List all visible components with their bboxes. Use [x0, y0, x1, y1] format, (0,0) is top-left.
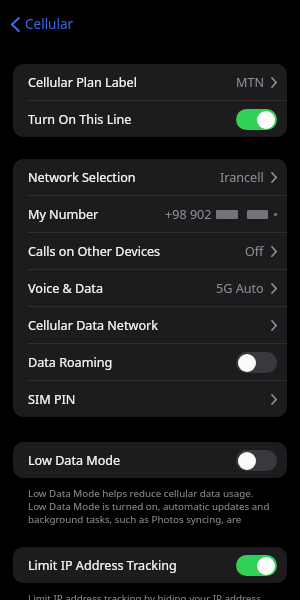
staticText: Calls on Other Devices — [28, 243, 161, 260]
button[interactable]: Low Data Mode — [13, 442, 287, 478]
button[interactable]: Toggle Turn On This Line — [236, 109, 277, 130]
button[interactable]: Limit IP Address Tracking — [13, 547, 287, 583]
staticText: Cellular — [25, 15, 74, 33]
staticText: +98 902 — [165, 206, 212, 223]
staticText: My Number — [28, 206, 99, 223]
staticText: Turn On This Line — [28, 111, 132, 128]
button[interactable]: SIM PIN — [13, 381, 287, 417]
staticText: Off — [245, 243, 264, 260]
staticText: 5G Auto — [216, 280, 264, 297]
staticText: Low Data Mode helps reduce cellular data… — [28, 487, 272, 500]
button[interactable]: Cellular Data Network — [13, 307, 287, 343]
staticText: SIM PIN — [28, 391, 76, 408]
staticText: Irancell — [220, 169, 264, 186]
staticText: Voice & Data — [28, 280, 103, 297]
button[interactable]: Network Selection — [13, 159, 287, 195]
staticText: background tasks, such as Photos syncing… — [28, 513, 272, 526]
button[interactable]: Cellular Plan Label — [13, 64, 287, 100]
button[interactable]: Turn On This Line — [13, 101, 287, 137]
staticText: Low Data Mode is turned on, automatic up… — [28, 500, 270, 513]
staticText: Limit IP Address Tracking — [28, 557, 177, 574]
staticText: Cellular Data Network — [28, 317, 158, 334]
button[interactable]: Toggle Limit IP Address Tracking — [236, 555, 277, 576]
button[interactable]: Cellular — [0, 11, 300, 37]
staticText: MTN — [236, 74, 264, 91]
button[interactable]: Data Roaming — [13, 344, 287, 380]
button[interactable]: Calls on Other Devices — [13, 233, 287, 269]
button[interactable]: Toggle Low Data Mode — [236, 450, 277, 471]
button[interactable]: My Number — [13, 196, 287, 232]
button[interactable]: Voice & Data — [13, 270, 287, 306]
staticText: Network Selection — [28, 169, 136, 186]
staticText: Low Data Mode — [28, 452, 121, 469]
staticText: Cellular Plan Label — [28, 74, 137, 91]
staticText: Data Roaming — [28, 354, 113, 371]
button[interactable]: Toggle Data Roaming — [236, 352, 277, 373]
staticText: Limit IP address tracking by hiding your… — [28, 592, 272, 600]
